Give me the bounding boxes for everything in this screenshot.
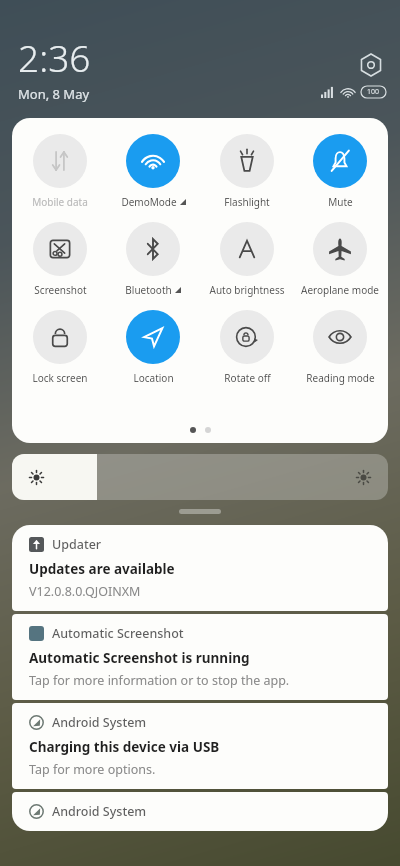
staticText: Updater xyxy=(52,536,102,553)
staticText: Location xyxy=(133,371,174,385)
staticText: Automatic Screenshot is running xyxy=(29,649,250,667)
staticText: Automatic Screenshot xyxy=(52,625,184,642)
button[interactable]: Android System xyxy=(12,703,388,789)
button[interactable]: Settings xyxy=(354,48,388,82)
button[interactable]: Flashlight xyxy=(202,132,292,211)
staticText: 100 xyxy=(367,87,380,97)
button[interactable]: Rotate off xyxy=(202,308,292,387)
staticText: Auto brightness xyxy=(209,283,285,297)
staticText: Android System xyxy=(52,803,147,820)
staticText: Flashlight xyxy=(224,195,270,209)
staticText: Android System xyxy=(52,714,147,731)
staticText: Rotate off xyxy=(224,371,271,385)
staticText: Bluetooth xyxy=(125,283,172,297)
staticText: Mute xyxy=(328,195,353,209)
staticText: 2:36 xyxy=(18,32,91,82)
staticText: Mobile data xyxy=(32,195,88,209)
button[interactable]: Reading mode xyxy=(295,308,385,387)
button[interactable]: Mute xyxy=(295,132,385,211)
button[interactable]: Screenshot xyxy=(15,220,105,299)
staticText: V12.0.8.0.QJOINXM xyxy=(29,583,141,600)
button[interactable]: Mobile data xyxy=(15,132,105,211)
staticText: Mon, 8 May xyxy=(18,85,90,103)
staticText: Aeroplane mode xyxy=(301,283,379,297)
button[interactable]: Auto brightness xyxy=(202,220,292,299)
button[interactable]: Location xyxy=(108,308,198,387)
staticText: Screenshot xyxy=(34,283,87,297)
button[interactable]: Updater xyxy=(12,525,388,611)
button[interactable]: Brightness xyxy=(12,454,388,500)
button[interactable]: Android System xyxy=(12,792,388,831)
staticText: Lock screen xyxy=(32,371,88,385)
button[interactable]: Aeroplane mode xyxy=(295,220,385,299)
staticText: DemoMode xyxy=(121,195,177,209)
button[interactable]: Bluetooth xyxy=(108,220,198,299)
staticText: Reading mode xyxy=(306,371,375,385)
button[interactable]: Lock screen xyxy=(15,308,105,387)
staticText: Updates are available xyxy=(29,560,175,578)
button[interactable]: Automatic Screenshot xyxy=(12,614,388,700)
button[interactable]: DemoMode xyxy=(108,132,198,211)
staticText: Tap for more information or to stop the … xyxy=(29,672,290,689)
staticText: Tap for more options. xyxy=(29,761,156,778)
staticText: Charging this device via USB xyxy=(29,738,220,756)
